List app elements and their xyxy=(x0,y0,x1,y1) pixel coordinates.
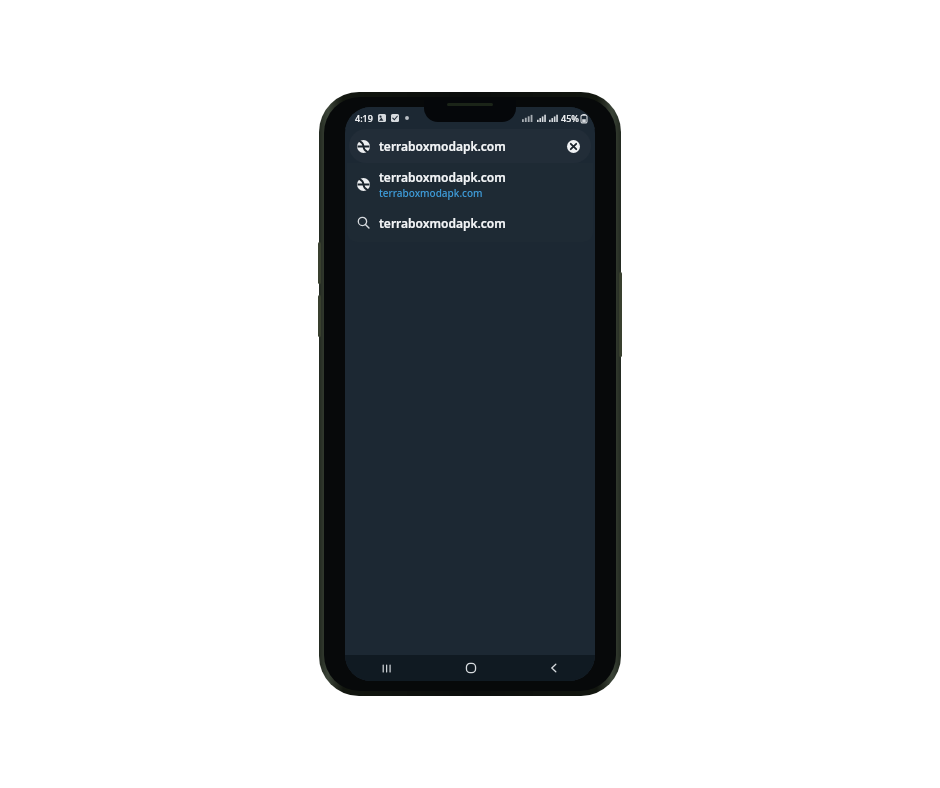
button[interactable]: terraboxmodapk.com xyxy=(349,129,591,163)
staticText: terraboxmodapk.com xyxy=(379,186,483,200)
staticText: 4:19 xyxy=(355,112,373,124)
staticText: terraboxmodapk.com xyxy=(379,215,506,231)
button[interactable]: Back xyxy=(512,655,595,681)
button[interactable]: Clear xyxy=(563,136,583,156)
staticText: 45% xyxy=(561,112,579,124)
button[interactable]: Home xyxy=(429,655,512,681)
button[interactable]: terraboxmodapk.com xyxy=(347,163,593,206)
button[interactable]: terraboxmodapk.com xyxy=(347,206,593,239)
staticText: terraboxmodapk.com xyxy=(379,138,557,154)
button[interactable]: Recents xyxy=(345,655,429,681)
staticText: terraboxmodapk.com xyxy=(379,169,506,185)
